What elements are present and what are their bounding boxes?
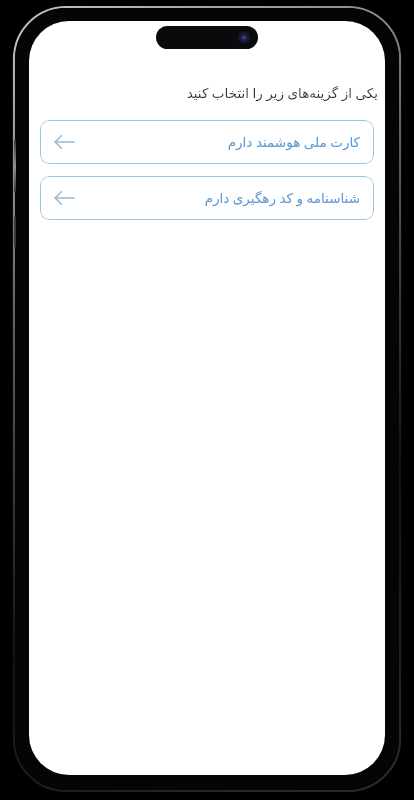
other: Continue xyxy=(54,191,74,205)
staticText: شناسنامه و کد رهگیری دارم xyxy=(74,189,360,207)
staticText: یکی از گزینه‌های زیر را انتخاب کنید xyxy=(29,84,378,102)
button[interactable]: Continue xyxy=(40,176,374,220)
button[interactable]: Continue xyxy=(40,120,374,164)
staticText: کارت ملی هوشمند دارم xyxy=(74,133,360,151)
other: Continue xyxy=(54,135,74,149)
